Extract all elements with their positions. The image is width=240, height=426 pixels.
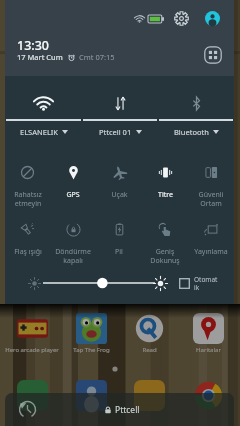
staticText: Hero arcade player <box>5 346 59 354</box>
button[interactable]: ELSANELIK <box>5 92 82 140</box>
button[interactable]: Titre <box>142 161 188 209</box>
button[interactable]: App <box>193 380 224 411</box>
button[interactable]: App <box>17 380 48 411</box>
staticText: Geniş Dokunuş <box>150 247 180 265</box>
button[interactable]: App <box>134 380 165 411</box>
button[interactable]: Pttcell 01 <box>82 92 158 140</box>
staticText: Pttcell <box>115 404 140 416</box>
button[interactable]: Read <box>134 313 165 344</box>
staticText: Haritalar <box>196 346 221 354</box>
button[interactable]: Uçak <box>96 161 142 209</box>
button[interactable]: Geniş Dokunuş <box>142 218 188 266</box>
staticText: Pttcell 01 <box>99 127 132 137</box>
staticText: Uçak <box>111 190 128 200</box>
staticText: Yayınlama <box>194 247 228 257</box>
button[interactable]: Pttcell <box>104 404 140 416</box>
staticText: 17 Mart Cum <box>17 52 63 62</box>
staticText: Otomatik <box>194 275 219 292</box>
button[interactable]: Flaş ışığı <box>5 218 50 266</box>
staticText: Tap The Frog <box>73 346 110 354</box>
button[interactable]: Döndürme kapalı <box>50 218 96 266</box>
staticText: Bluetooth <box>174 127 209 137</box>
staticText: Cmt 07:15 <box>79 52 115 62</box>
button[interactable]: Haritalar <box>193 313 224 344</box>
button[interactable]: Bluetooth <box>158 92 234 140</box>
staticText: 13:30 <box>17 37 50 54</box>
staticText: ELSANELIK <box>20 127 58 137</box>
staticText: Rahatsız etmeyin <box>14 190 42 208</box>
button[interactable]: All settings <box>204 46 222 64</box>
button[interactable]: Rahatsız etmeyin <box>5 161 50 209</box>
staticText: GPS <box>66 190 80 200</box>
staticText: Read <box>142 346 157 354</box>
button[interactable]: Recent apps <box>18 400 37 419</box>
staticText: Güvenli Ortam <box>188 190 234 208</box>
button[interactable]: User profile <box>205 11 220 26</box>
button[interactable]: Settings <box>174 11 189 26</box>
button[interactable]: App <box>76 380 107 411</box>
button[interactable]: Güvenli Ortam <box>188 161 234 209</box>
staticText: Döndürme kapalı <box>55 247 91 265</box>
button[interactable]: Tap The Frog <box>76 313 107 344</box>
button[interactable]: Otomatik <box>179 275 219 292</box>
staticText: Titre <box>158 190 173 200</box>
button[interactable]: Yayınlama <box>188 218 234 266</box>
staticText: Flaş ışığı <box>14 247 42 257</box>
staticText: Pil <box>115 247 123 257</box>
button[interactable]: GPS <box>50 161 96 209</box>
button[interactable]: Pil <box>96 218 142 266</box>
button[interactable]: Hero arcade player <box>17 313 48 344</box>
button[interactable]: Brightness <box>43 275 155 291</box>
